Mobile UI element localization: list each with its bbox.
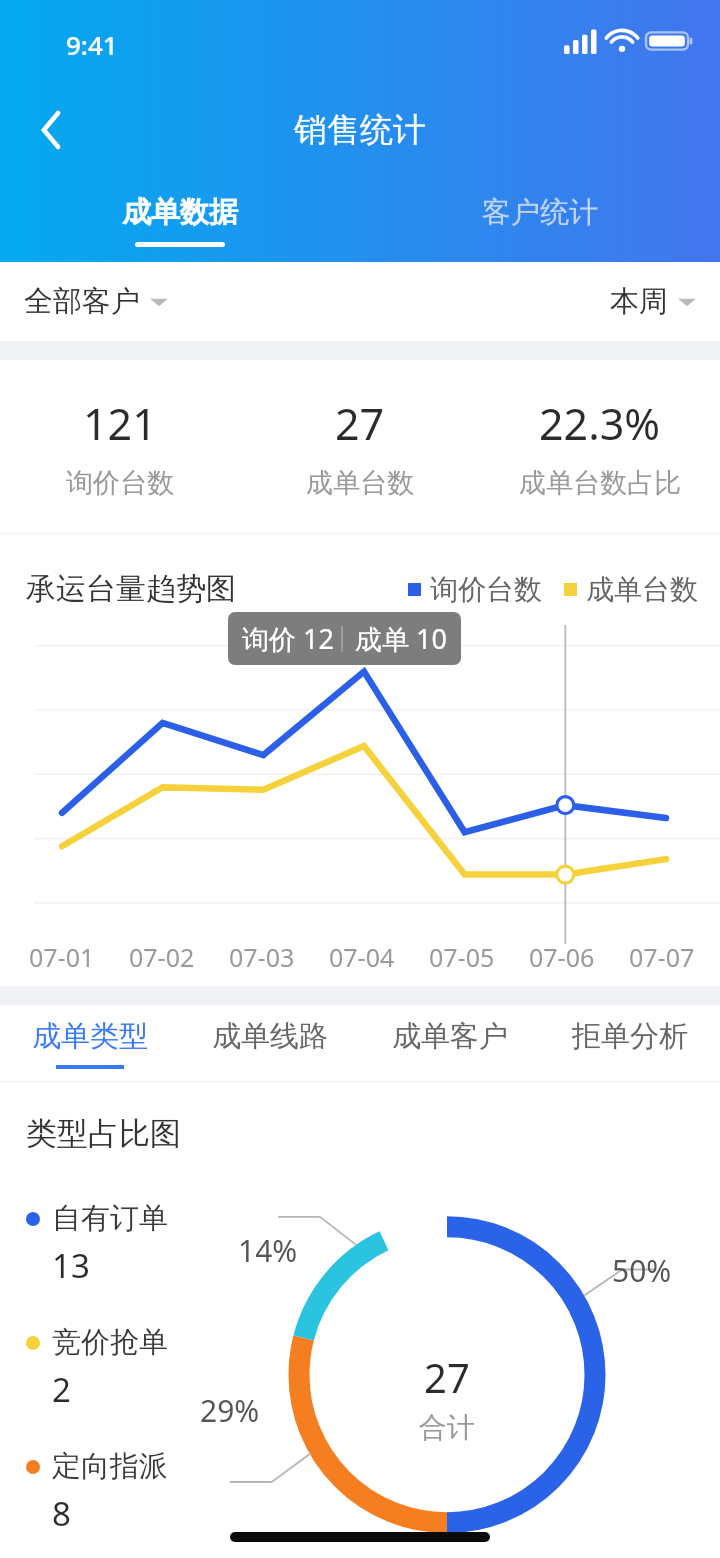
staticText: 成单台数 <box>306 466 414 500</box>
staticText: 27 <box>335 394 385 453</box>
staticText: 29% <box>200 1390 260 1431</box>
button[interactable]: 成单线路 <box>180 1005 360 1081</box>
staticText: 07-02 <box>129 940 195 974</box>
staticText: 121 <box>83 394 157 453</box>
staticText: 07-06 <box>529 940 595 974</box>
staticText: 07-04 <box>329 940 395 974</box>
staticText: 拒单分析 <box>572 1018 688 1055</box>
staticText: 询价台数 <box>66 466 174 500</box>
button[interactable]: 本周 <box>610 283 696 320</box>
staticText: 13 <box>52 1243 90 1288</box>
button[interactable]: 121 <box>0 360 240 533</box>
staticText: 合计 <box>419 1410 475 1445</box>
staticText: 成单 10 <box>355 620 447 657</box>
staticText: 成单线路 <box>212 1018 328 1055</box>
staticText: 询价台数 <box>430 572 542 607</box>
staticText: 27 <box>424 1350 470 1404</box>
staticText: 成单数据 <box>122 194 238 231</box>
staticText: 22.3% <box>539 394 661 453</box>
staticText: 全部客户 <box>24 283 140 320</box>
staticText: 定向指派 <box>52 1448 168 1485</box>
staticText: 成单台数占比 <box>519 466 681 500</box>
staticText: 07-01 <box>29 940 95 974</box>
staticText: 8 <box>52 1491 71 1536</box>
button[interactable]: 27 <box>240 360 480 533</box>
staticText: 2 <box>52 1367 71 1412</box>
staticText: 销售统计 <box>294 109 426 151</box>
staticText: 询价 12 <box>242 620 334 657</box>
staticText: 本周 <box>610 283 668 320</box>
staticText: 14% <box>238 1230 298 1271</box>
staticText: 9:41 <box>66 27 118 62</box>
staticText: 07-05 <box>429 940 495 974</box>
button[interactable]: 成单数据 <box>0 190 360 251</box>
button[interactable]: 成单类型 <box>0 1005 180 1081</box>
button[interactable]: 全部客户 <box>24 283 168 320</box>
staticText: 07-07 <box>629 940 695 974</box>
button[interactable]: Back <box>18 104 70 156</box>
button[interactable]: 拒单分析 <box>540 1005 720 1081</box>
staticText: 成单类型 <box>32 1018 148 1055</box>
staticText: 类型占比图 <box>26 1114 181 1153</box>
staticText: 竞价抢单 <box>52 1324 168 1361</box>
staticText: 自有订单 <box>52 1200 168 1237</box>
staticText: 成单客户 <box>392 1018 508 1055</box>
staticText: 客户统计 <box>482 194 598 231</box>
staticText: 07-03 <box>229 940 295 974</box>
staticText: 50% <box>612 1250 672 1291</box>
staticText: 承运台量趋势图 <box>26 570 236 608</box>
button[interactable]: 客户统计 <box>360 190 720 251</box>
staticText: 成单台数 <box>586 572 698 607</box>
button[interactable]: 成单客户 <box>360 1005 540 1081</box>
button[interactable]: 22.3% <box>480 360 720 533</box>
